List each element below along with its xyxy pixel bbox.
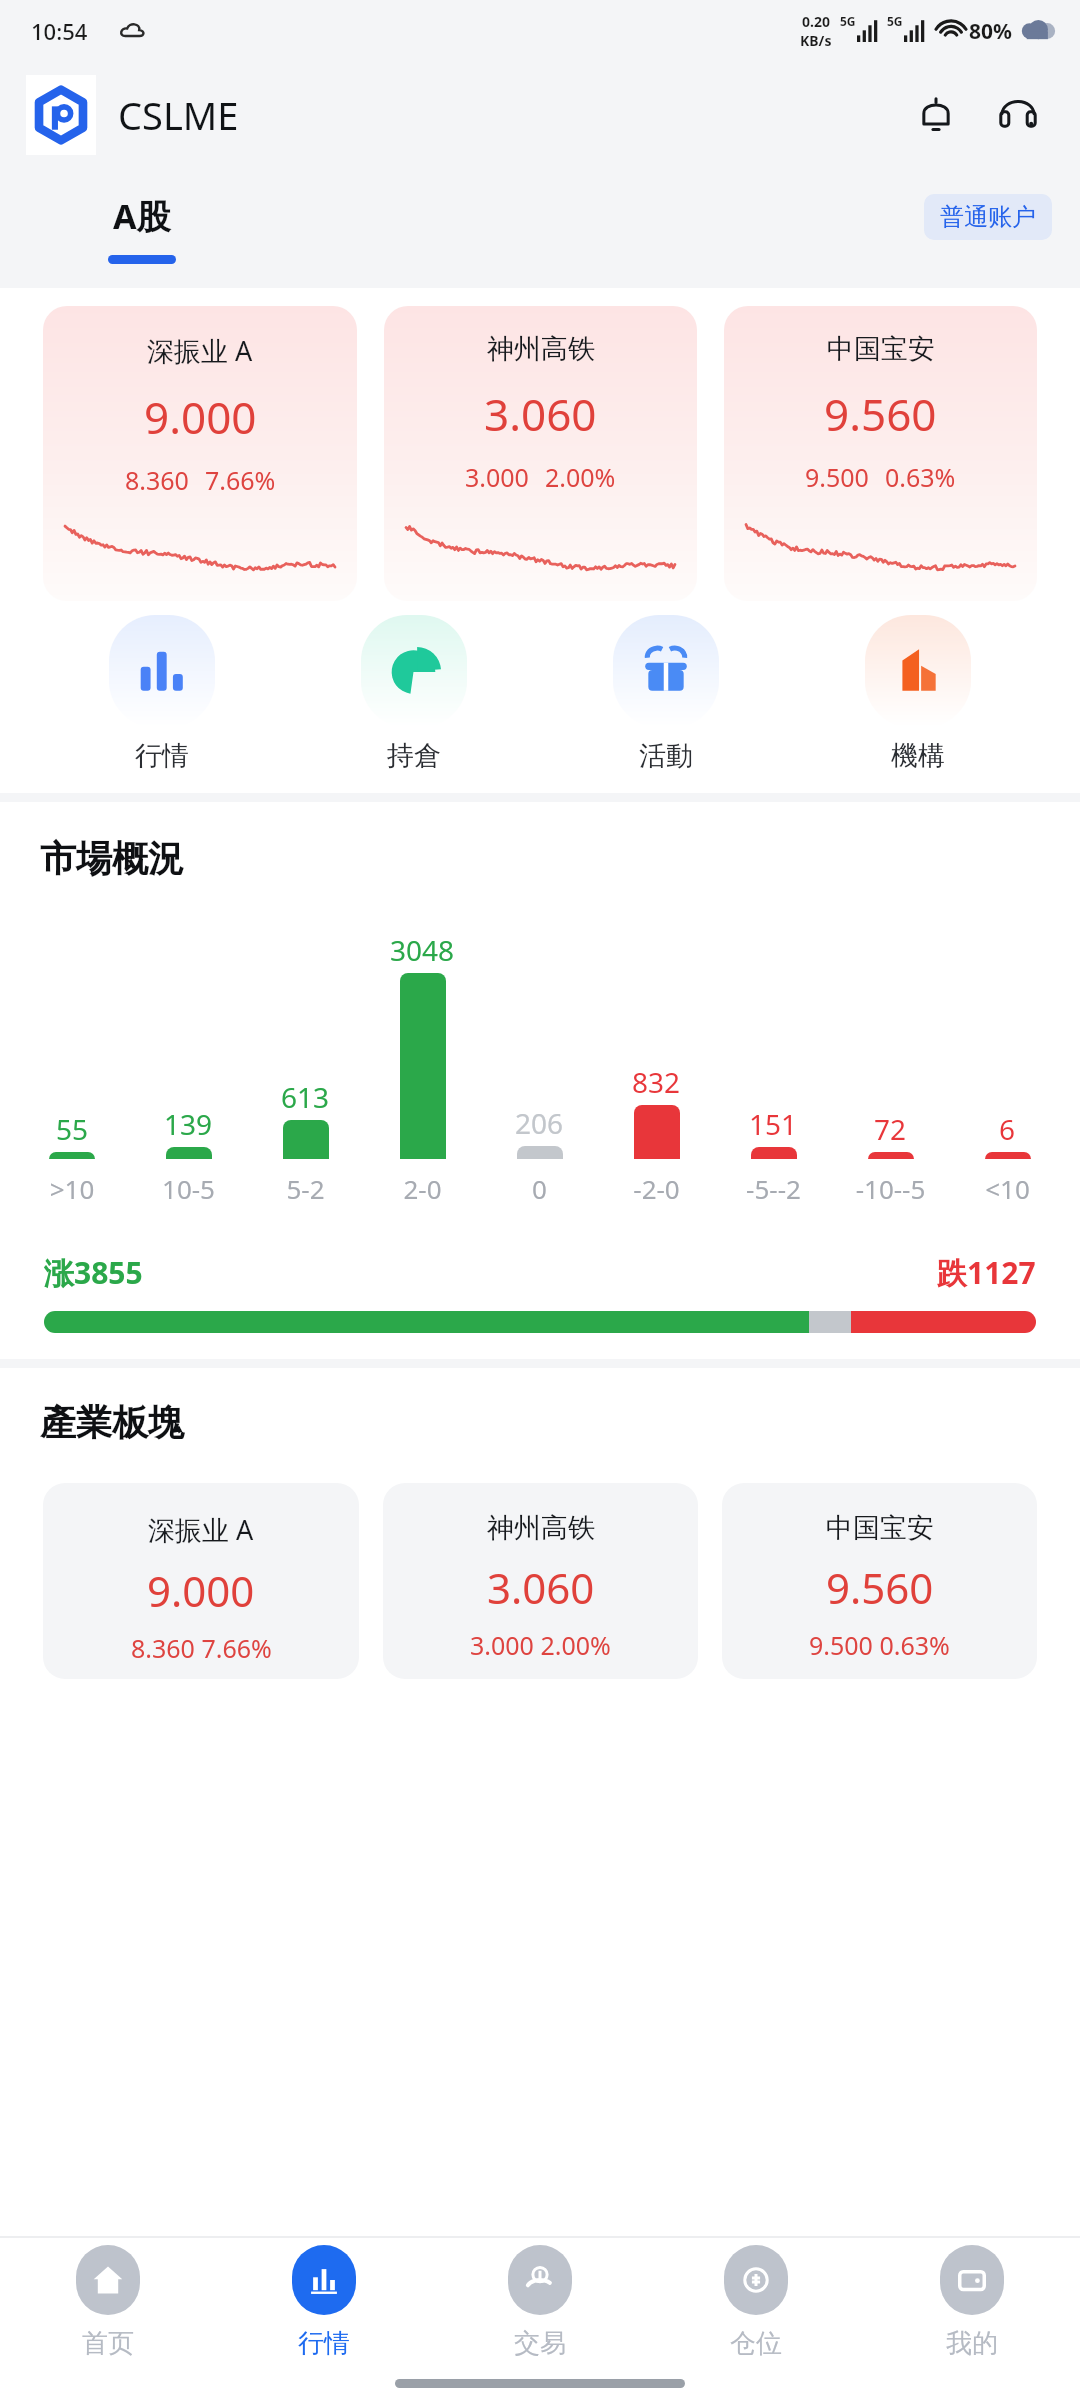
staticText: 139 [164, 1105, 213, 1143]
staticText: 普通账户 [940, 202, 1036, 232]
staticText: 0.20 [802, 12, 830, 31]
staticText: -5--2 [715, 1171, 832, 1206]
staticText: 涨3855 [44, 1252, 143, 1293]
staticText: CSLME [118, 89, 239, 141]
staticText: 9.000 [144, 387, 257, 447]
staticText: 跌1127 [937, 1252, 1036, 1293]
staticText: 我的 [946, 2327, 998, 2360]
button[interactable]: 中国宝安 [722, 1483, 1037, 1679]
button[interactable]: 神州高铁 [383, 1483, 698, 1679]
staticText: 206 [515, 1104, 564, 1142]
staticText: 深振业 A [148, 1511, 254, 1548]
staticText: 交易 [514, 2327, 566, 2360]
staticText: -10--5 [832, 1171, 949, 1206]
staticText: 持倉 [387, 739, 441, 773]
staticText: 5G [887, 13, 903, 29]
staticText: 832 [632, 1063, 681, 1101]
staticText: 3.000 2.00% [470, 1628, 611, 1662]
staticText: 0 [481, 1171, 598, 1206]
staticText: 仓位 [730, 2327, 782, 2360]
staticText: 5-2 [247, 1171, 364, 1206]
staticText: 6 [999, 1110, 1016, 1148]
staticText: 神州高铁 [487, 1511, 595, 1545]
button[interactable]: 行情 [36, 615, 288, 773]
staticText: 神州高铁 [487, 332, 595, 366]
staticText: 8.360 7.66% [131, 1631, 272, 1665]
button[interactable]: Customer service [986, 83, 1050, 147]
button[interactable]: 首页 [0, 2238, 216, 2366]
button[interactable]: 持倉 [288, 615, 540, 773]
staticText: 首页 [82, 2327, 134, 2360]
button[interactable]: 神州高铁 [384, 306, 697, 601]
staticText: 3.060 [484, 384, 597, 444]
button[interactable]: 機構 [792, 615, 1044, 773]
staticText: 深振业 A [147, 332, 253, 369]
staticText: 5G [840, 13, 856, 29]
staticText: 10:54 [31, 16, 88, 46]
button[interactable]: 中国宝安 [724, 306, 1037, 601]
button[interactable]: 深振业 A [43, 1483, 359, 1679]
staticText: 0.63% [885, 460, 956, 494]
staticText: A股 [113, 193, 171, 239]
staticText: 72 [874, 1110, 907, 1148]
button[interactable]: 深振业 A [43, 306, 357, 601]
staticText: 2-0 [364, 1171, 481, 1206]
staticText: 9.500 0.63% [809, 1628, 950, 1662]
staticText: 產業板塊 [40, 1400, 184, 1445]
staticText: 3.000 [465, 460, 529, 494]
staticText: 活動 [639, 739, 693, 773]
staticText: 8.360 [125, 463, 189, 497]
staticText: 行情 [298, 2327, 350, 2360]
button[interactable]: A股 [108, 193, 176, 264]
staticText: 機構 [891, 739, 945, 773]
staticText: 3.060 [487, 1559, 595, 1616]
staticText: 2.00% [545, 460, 616, 494]
staticText: -2-0 [598, 1171, 715, 1206]
staticText: 80% [969, 17, 1012, 46]
staticText: 9.000 [147, 1562, 255, 1619]
staticText: KB/s [800, 31, 832, 50]
staticText: 151 [749, 1105, 798, 1143]
staticText: <10 [949, 1171, 1066, 1206]
button[interactable]: Notifications [904, 83, 968, 147]
staticText: 9.560 [826, 1559, 934, 1616]
staticText: 10-5 [130, 1171, 247, 1206]
button[interactable]: 活動 [540, 615, 792, 773]
staticText: 行情 [135, 739, 189, 773]
staticText: 7.66% [205, 463, 276, 497]
button[interactable]: 我的 [864, 2238, 1080, 2366]
button[interactable]: 仓位 [648, 2238, 864, 2366]
button[interactable]: 普通账户 [924, 194, 1052, 240]
button[interactable]: 交易 [432, 2238, 648, 2366]
button[interactable]: 行情 [216, 2238, 432, 2366]
staticText: 3048 [390, 931, 455, 969]
staticText: 中国宝安 [827, 332, 935, 366]
staticText: >10 [14, 1171, 130, 1206]
staticText: 613 [281, 1078, 330, 1116]
staticText: 9.500 [805, 460, 869, 494]
staticText: 9.560 [824, 384, 937, 444]
staticText: 中国宝安 [826, 1511, 934, 1545]
staticText: 市場概況 [40, 836, 184, 881]
staticText: 55 [56, 1110, 89, 1148]
